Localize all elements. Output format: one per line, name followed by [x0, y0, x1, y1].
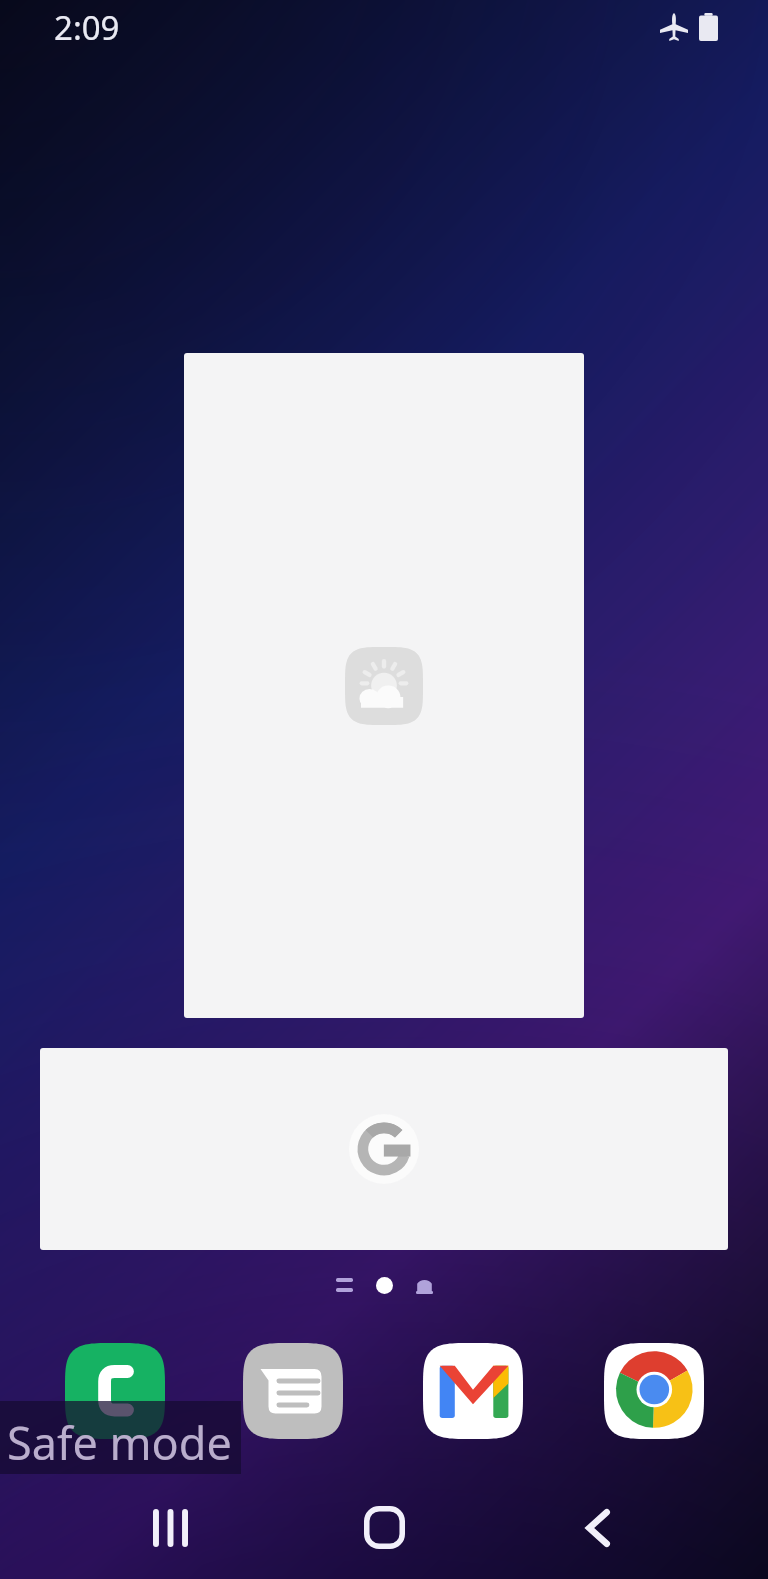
button[interactable]	[184, 353, 584, 1018]
button[interactable]: Chrome	[604, 1343, 704, 1439]
button[interactable]	[40, 1048, 728, 1250]
button[interactable]: Messages	[243, 1343, 343, 1439]
staticText: Safe mode	[7, 1412, 232, 1473]
button[interactable]: Gmail	[423, 1343, 523, 1439]
staticText: 2:09	[54, 5, 120, 50]
button[interactable]: Apps list page	[324, 1265, 364, 1305]
button[interactable]: Home	[304, 1473, 464, 1579]
button[interactable]: Home page	[404, 1265, 444, 1305]
button[interactable]: Recent apps	[90, 1473, 250, 1579]
button[interactable]: Phone	[65, 1343, 165, 1439]
button[interactable]: Back	[518, 1473, 678, 1579]
button[interactable]: Current page	[364, 1265, 404, 1305]
